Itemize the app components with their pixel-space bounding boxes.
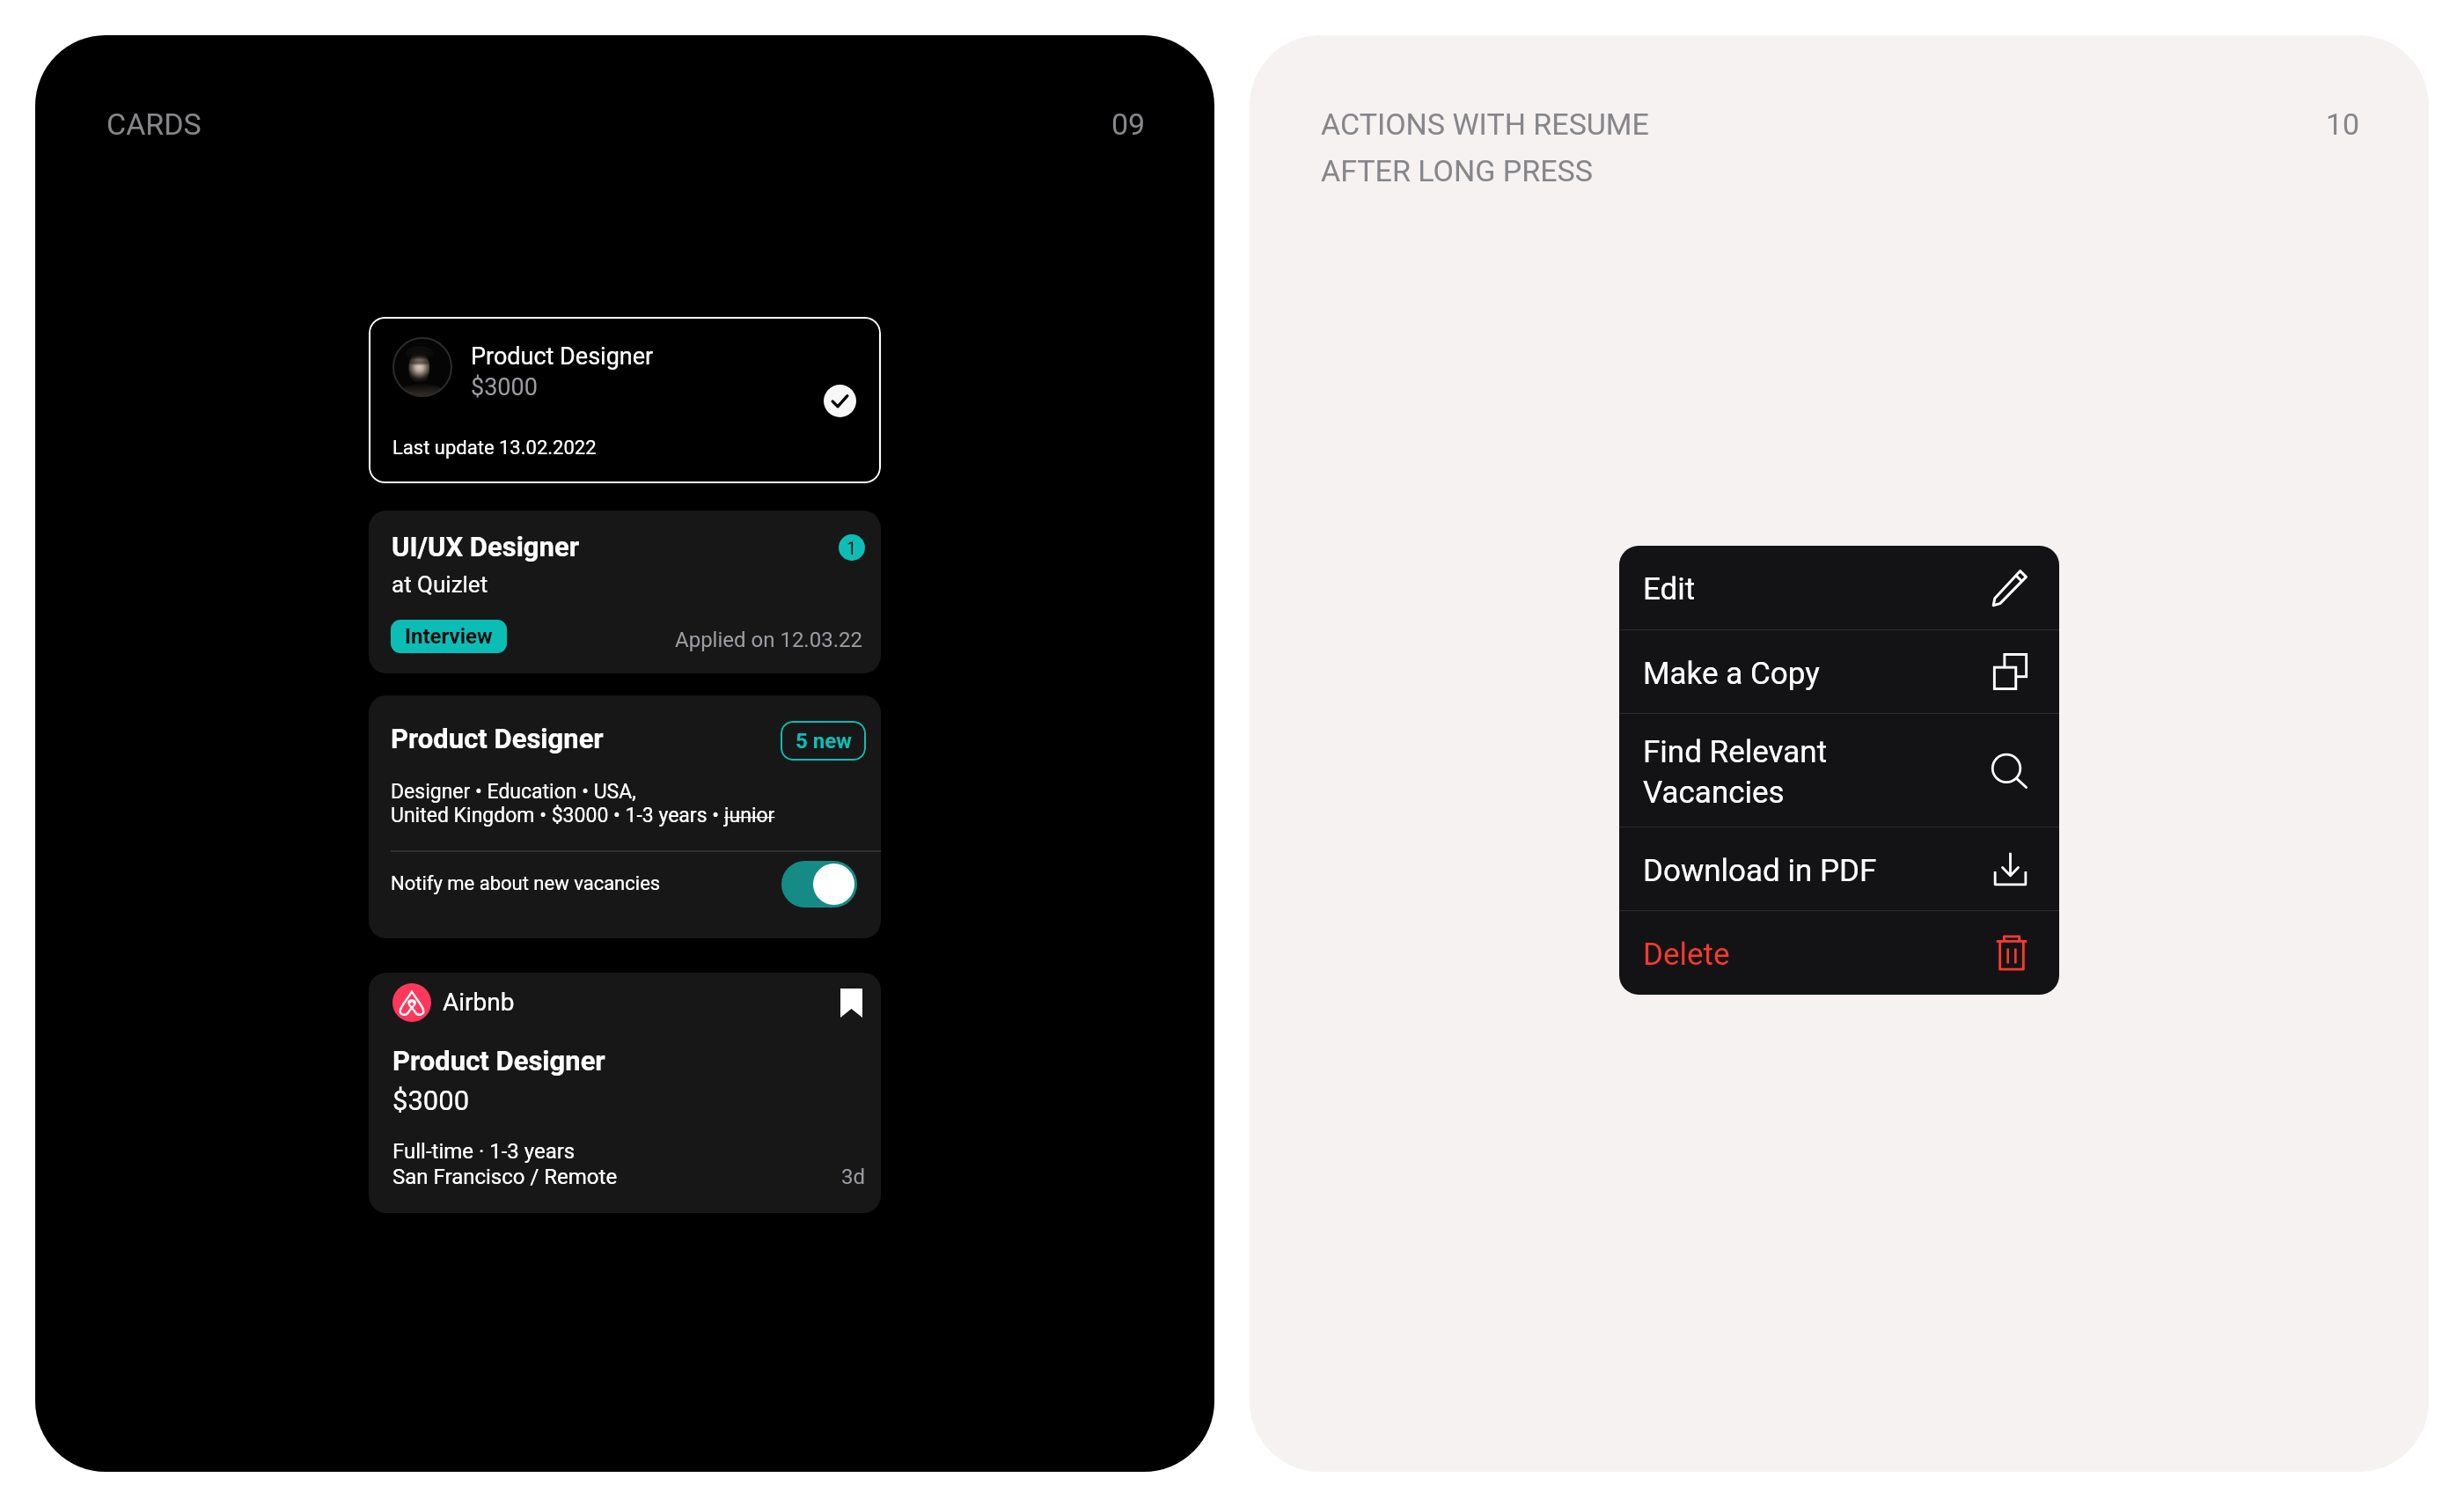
staticText: Notify me about new vacancies [391, 872, 661, 895]
staticText: Download in PDF [1643, 853, 1877, 889]
button[interactable]: Airbnb [369, 973, 881, 1213]
button[interactable]: Selected [824, 385, 856, 417]
staticText: at Quizlet [392, 571, 488, 598]
staticText: ACTIONS WITH RESUME AFTER LONG PRESS [1321, 107, 1649, 188]
staticText: Applied on 12.03.22 [675, 628, 862, 652]
button[interactable]: Interview [391, 620, 507, 653]
staticText: United Kingdom • $3000 • 1-3 years • [391, 804, 724, 827]
button[interactable]: Download in PDF [1619, 827, 2059, 910]
staticText: Interview [405, 624, 493, 649]
staticText: Edit [1643, 571, 1696, 607]
staticText: 5 new [796, 729, 852, 753]
button[interactable]: 5 new [781, 721, 866, 761]
staticText: San Francisco / Remote [392, 1165, 618, 1189]
staticText: Full-time · 1-3 years [392, 1139, 576, 1164]
button[interactable]: Edit [1619, 546, 2059, 629]
button[interactable]: Save job [840, 989, 862, 1018]
staticText: 1 [847, 538, 857, 558]
staticText: Make a Copy [1643, 656, 1820, 692]
button[interactable]: Product Designer [369, 695, 881, 938]
staticText: Product Designer [471, 342, 654, 371]
staticText: CARDS [106, 107, 202, 142]
staticText: Delete [1643, 937, 1730, 973]
button[interactable]: Delete [1619, 911, 2059, 995]
button[interactable]: Make a Copy [1619, 630, 2059, 713]
staticText: Last update 13.02.2022 [392, 437, 597, 459]
staticText: Find Relevant Vacancies [1643, 734, 1828, 810]
button[interactable]: Product Designer [369, 317, 881, 483]
staticText: $3000 [471, 373, 538, 401]
staticText: 10 [2326, 107, 2360, 142]
staticText: junior [724, 804, 775, 827]
staticText: Airbnb [443, 988, 515, 1017]
staticText: Product Designer [391, 723, 604, 754]
staticText: $3000 [392, 1084, 470, 1116]
button[interactable]: Toggle new vacancy notifications [781, 861, 857, 908]
staticText: UI/UX Designer [392, 531, 580, 562]
button[interactable]: UI/UX Designer [369, 511, 881, 673]
staticText: Product Designer [392, 1045, 605, 1077]
staticText: 3d [841, 1165, 866, 1189]
button[interactable]: Find Relevant Vacancies [1619, 714, 2059, 827]
staticText: Designer • Education • USA, [391, 780, 636, 804]
staticText: 09 [1111, 107, 1146, 142]
